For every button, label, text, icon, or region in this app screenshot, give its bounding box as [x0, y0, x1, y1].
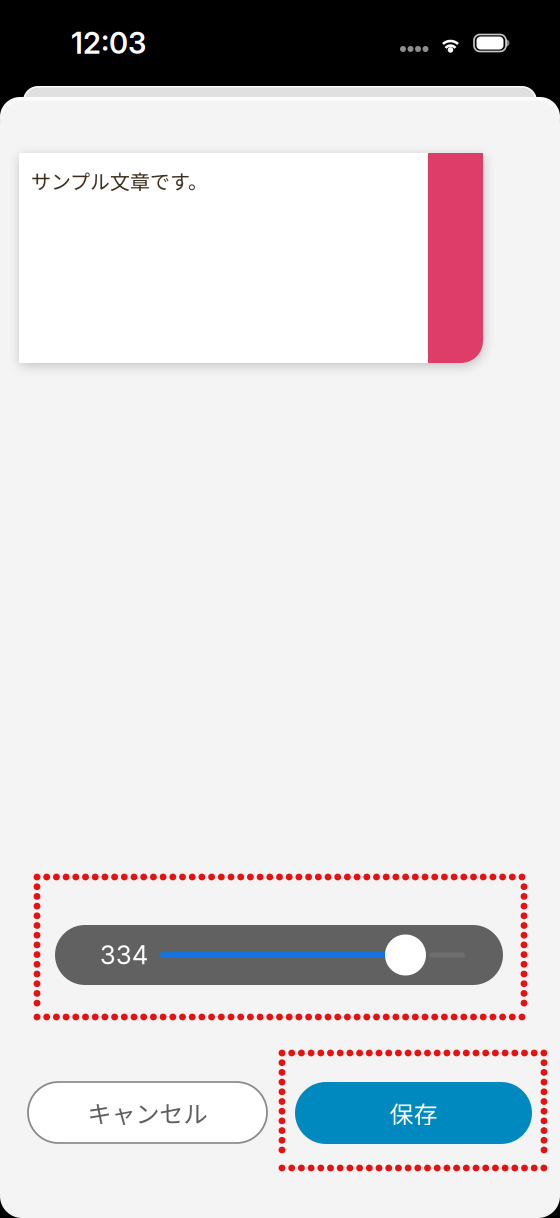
staticText: サンプル文章です。	[31, 166, 208, 195]
staticText: 12:03	[71, 25, 146, 61]
button[interactable]: Value slider, 334	[55, 925, 503, 985]
button[interactable]: キャンセル	[28, 1082, 267, 1143]
staticText: 334	[100, 940, 148, 970]
staticText: キャンセル	[87, 1095, 207, 1130]
button[interactable]: 保存	[295, 1082, 532, 1144]
button[interactable]: サンプル文章です。	[19, 153, 483, 363]
staticText: 保存	[389, 1096, 437, 1130]
